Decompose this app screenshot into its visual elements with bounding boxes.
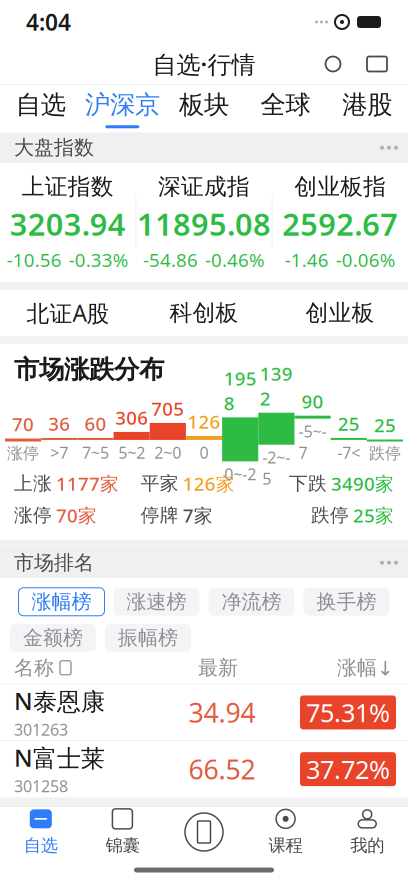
staticText: 创业板指 (294, 173, 386, 200)
staticText: 0~-2 (224, 463, 256, 484)
staticText: 科创板 (169, 299, 238, 327)
button[interactable]: 振幅榜 (105, 624, 191, 652)
staticText: -2~-5 (262, 447, 290, 489)
staticText: N泰恩康 (14, 685, 105, 717)
button[interactable]: 创业板指 (272, 163, 408, 282)
staticText: 涨停 (7, 443, 39, 463)
button[interactable]: 深证成指 (136, 163, 272, 282)
staticText: -54.86 (143, 247, 198, 272)
button[interactable]: 北证A股 (0, 290, 136, 336)
button[interactable]: 科创板 (136, 290, 272, 336)
button[interactable]: 更多 (370, 133, 408, 163)
staticText: 北证A股 (26, 298, 109, 328)
staticText: 大盘指数 (14, 135, 94, 160)
staticText: 705 (151, 396, 184, 421)
staticText: 301263 (14, 719, 68, 740)
staticText: 名称 (14, 655, 54, 680)
staticText: 市场涨跌分布 (14, 354, 164, 385)
button[interactable]: 课程 (245, 808, 326, 856)
staticText: 37.72% (306, 752, 390, 786)
button[interactable]: 沪深京 (82, 85, 163, 133)
staticText: 板块 (179, 89, 229, 120)
staticText: 涨速榜 (126, 589, 186, 614)
staticText: 市场排名 (14, 550, 94, 575)
staticText: 25 (338, 411, 360, 436)
button[interactable]: 涨速榜 (113, 588, 199, 616)
staticText: 我的 (350, 835, 384, 856)
button[interactable]: 净流榜 (208, 588, 294, 616)
button[interactable]: 全球 (245, 85, 326, 133)
staticText: 3490家 (331, 471, 394, 496)
staticText: 1958 (224, 366, 257, 415)
staticText: 70家 (56, 503, 97, 528)
button[interactable]: 自选 (0, 808, 82, 856)
staticText: 75.31% (306, 696, 390, 729)
button[interactable]: 金额榜 (10, 624, 96, 652)
button[interactable]: 涨幅榜 (18, 588, 104, 616)
staticText: 深证成指 (158, 173, 250, 200)
staticText: 7家 (183, 503, 213, 528)
staticText: 振幅榜 (118, 625, 178, 650)
staticText: 上证指数 (22, 173, 114, 200)
staticText: -0.46% (205, 247, 265, 272)
staticText: -0.06% (336, 247, 396, 272)
staticText: 2592.67 (282, 203, 398, 244)
staticText: 0 (199, 442, 208, 463)
staticText: 301258 (14, 775, 68, 797)
staticText: 自选 (24, 835, 58, 856)
staticText: 70 (12, 412, 34, 436)
button[interactable]: 自选 (0, 85, 82, 133)
staticText: -1.46 (285, 247, 329, 272)
button[interactable]: 消息 (358, 45, 396, 83)
staticText: -7< (337, 442, 360, 463)
staticText: 课程 (269, 835, 303, 856)
button[interactable]: 搜索 (314, 45, 352, 83)
staticText: 90 (301, 389, 323, 414)
staticText: 4:04 (26, 7, 71, 37)
staticText: 25家 (353, 503, 394, 528)
staticText: 最新 (198, 655, 238, 680)
staticText: 126家 (183, 471, 235, 496)
staticText: 1392 (260, 361, 293, 411)
button[interactable]: 更多 (370, 548, 408, 578)
button[interactable]: 创业板 (272, 290, 408, 336)
staticText: 跌停 (311, 504, 349, 527)
button[interactable]: 港股 (326, 85, 408, 133)
button[interactable]: 换手榜 (303, 588, 389, 616)
staticText: 停牌 (141, 504, 179, 527)
staticText: 涨停 (14, 504, 52, 527)
staticText: 平家 (141, 472, 179, 495)
staticText: 36 (48, 411, 70, 436)
staticText: 全球 (261, 89, 311, 120)
staticText: 66.52 (188, 751, 255, 787)
staticText: 11895.08 (137, 203, 271, 244)
staticText: -0.33% (69, 247, 129, 272)
staticText: 涨幅↓ (337, 655, 394, 680)
staticText: 5~2 (118, 442, 145, 463)
staticText: 7~5 (82, 442, 109, 463)
staticText: 上涨 (14, 472, 52, 495)
staticText: >7 (50, 442, 68, 463)
staticText: 126 (187, 409, 220, 434)
button[interactable]: 我的 (326, 808, 408, 856)
staticText: -10.56 (7, 247, 62, 272)
staticText: 60 (84, 411, 106, 436)
staticText: N富士莱 (14, 741, 105, 773)
staticText: 1177家 (56, 471, 119, 496)
staticText: 锦囊 (105, 835, 139, 856)
staticText: 3203.94 (10, 203, 126, 244)
button[interactable]: 板块 (163, 85, 245, 133)
staticText: -5~-7 (298, 421, 326, 463)
button[interactable]: 首页 (163, 808, 245, 856)
staticText: 沪深京 (85, 89, 160, 120)
staticText: 下跌 (289, 472, 327, 495)
staticText: 25 (374, 413, 396, 437)
staticText: 换手榜 (316, 589, 376, 614)
button[interactable]: 上证指数 (0, 163, 135, 282)
staticText: 跌停 (369, 443, 401, 463)
button[interactable]: 锦囊 (82, 808, 163, 856)
button[interactable]: N富士莱 (0, 741, 408, 797)
button[interactable]: N泰恩康 (0, 684, 408, 740)
staticText: 2~0 (154, 442, 181, 463)
staticText: 34.94 (188, 695, 255, 730)
